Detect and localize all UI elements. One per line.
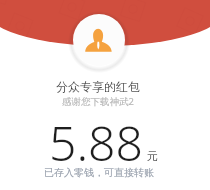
staticText: 分众专享的红包 [56, 79, 140, 94]
button[interactable]: User avatar [73, 14, 125, 66]
staticText: 已存入零钱，可直接转账 [44, 166, 154, 179]
staticText: 元 [147, 149, 158, 163]
staticText: 感谢您下载神武2 [62, 95, 134, 108]
staticText: 5.88 [49, 110, 143, 175]
